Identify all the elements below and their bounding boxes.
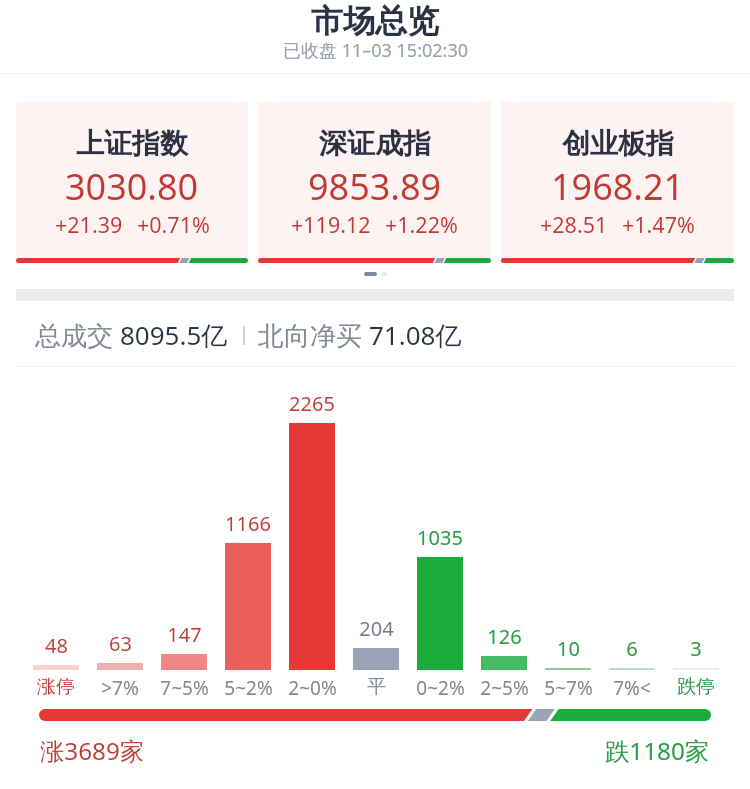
button[interactable]: 2~5% 126家 <box>472 380 536 696</box>
button[interactable]: 深证成指 <box>258 102 491 263</box>
staticText: 北向净买 <box>258 317 369 353</box>
staticText: 0~2% <box>416 675 465 701</box>
staticText: 8095.5亿 <box>120 317 228 353</box>
button[interactable]: >7% 63家 <box>88 380 152 696</box>
staticText: 创业板指 <box>562 126 674 161</box>
staticText: 3 <box>690 635 702 662</box>
button[interactable]: 第一页 <box>364 272 377 276</box>
staticText: 63 <box>109 630 132 657</box>
button[interactable]: 第二页 <box>381 272 387 276</box>
button[interactable]: 总成交 <box>0 310 750 360</box>
staticText: >7% <box>101 675 139 701</box>
staticText: 71.08亿 <box>369 317 462 353</box>
staticText: 总成交 <box>35 317 120 353</box>
staticText: +1.47% <box>622 210 695 239</box>
button[interactable]: 涨停 48家 <box>24 380 88 696</box>
staticText: 10 <box>557 635 580 662</box>
button[interactable]: 7~5% 147家 <box>152 380 216 696</box>
staticText: 3030.80 <box>65 162 199 211</box>
staticText: 1035 <box>417 524 463 551</box>
staticText: +0.71% <box>137 210 210 239</box>
staticText: 147 <box>167 621 202 648</box>
button[interactable]: 平 204家 <box>344 380 408 696</box>
staticText: 跌停 <box>677 675 715 699</box>
staticText: +119.12 <box>291 210 371 239</box>
staticText: 1968.21 <box>551 162 685 211</box>
button[interactable]: 跌停 3家 <box>664 380 728 696</box>
button[interactable]: 上证指数 <box>16 102 248 263</box>
staticText: 7~5% <box>160 675 209 701</box>
staticText: +21.39 <box>55 210 123 239</box>
staticText: 6 <box>626 635 638 662</box>
button[interactable]: 0~2% 1035家 <box>408 380 472 696</box>
staticText: 5~7% <box>544 675 593 701</box>
staticText: 上证指数 <box>76 126 188 161</box>
staticText: 涨停 <box>37 675 75 699</box>
button[interactable]: 市场总览 <box>0 0 750 73</box>
button[interactable]: 7%< 6家 <box>600 380 664 696</box>
staticText: 48 <box>45 632 68 659</box>
staticText: 平 <box>367 675 386 699</box>
staticText: 7%< <box>613 675 651 701</box>
staticText: 9853.89 <box>308 162 442 211</box>
button[interactable]: 创业板指 <box>501 102 734 263</box>
staticText: 126 <box>487 623 522 650</box>
staticText: 跌1180家 <box>605 734 710 767</box>
button[interactable]: 5~7% 10家 <box>536 380 600 696</box>
staticText: 2265 <box>289 390 335 417</box>
staticText: 已收盘 11–03 15:02:30 <box>283 38 468 63</box>
staticText: 涨3689家 <box>40 734 145 767</box>
button[interactable]: 2~0% 2265家 <box>280 380 344 696</box>
staticText: 2~0% <box>288 675 337 701</box>
staticText: 5~2% <box>224 675 273 701</box>
staticText: 204 <box>359 615 394 642</box>
button[interactable]: 5~2% 1166家 <box>216 380 280 696</box>
staticText: 深证成指 <box>319 126 431 161</box>
staticText: +1.22% <box>385 210 458 239</box>
staticText: 市场总览 <box>311 1 439 41</box>
staticText: 1166 <box>225 510 271 537</box>
staticText: +28.51 <box>540 210 608 239</box>
staticText: 2~5% <box>480 675 529 701</box>
